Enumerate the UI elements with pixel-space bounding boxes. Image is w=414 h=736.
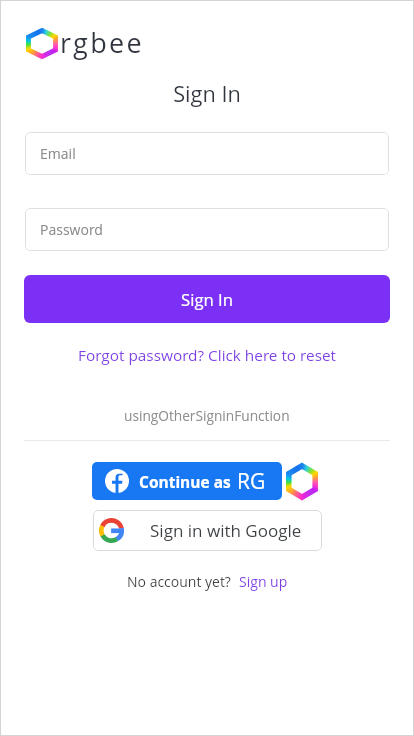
button[interactable]: Password bbox=[25, 208, 389, 251]
staticText: Password bbox=[40, 220, 103, 239]
button[interactable]: Sign In bbox=[24, 275, 390, 323]
staticText: RG bbox=[237, 467, 266, 496]
staticText: Sign in with Google bbox=[150, 519, 302, 542]
button[interactable]: Continue as bbox=[92, 462, 282, 500]
other: rgbee bbox=[286, 463, 318, 500]
button[interactable]: Sign up bbox=[239, 572, 288, 591]
staticText: Email bbox=[40, 144, 76, 163]
staticText: usingOtherSigninFunction bbox=[124, 406, 290, 425]
staticText: Continue as bbox=[139, 471, 231, 492]
staticText: Sign In bbox=[0, 79, 414, 109]
button[interactable]: Email bbox=[25, 132, 389, 175]
button[interactable]: Sign in with Google bbox=[93, 510, 322, 551]
staticText: Sign In bbox=[181, 288, 233, 311]
staticText: No account yet? bbox=[127, 572, 231, 591]
button[interactable]: Forgot password? Click here to reset bbox=[78, 345, 337, 366]
staticText: rgbee bbox=[60, 24, 144, 61]
